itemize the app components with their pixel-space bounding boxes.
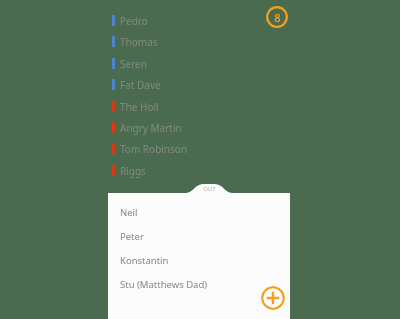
- button[interactable]: Peter: [108, 224, 290, 248]
- button[interactable]: Angry Martin: [112, 117, 282, 138]
- staticText: Stu (Matthews Dad): [120, 278, 208, 291]
- staticText: Peter: [120, 230, 144, 243]
- button[interactable]: Riggs: [112, 160, 282, 181]
- staticText: Pedro: [120, 14, 148, 28]
- button[interactable]: OUT: [196, 184, 222, 194]
- staticText: Konstantin: [120, 254, 169, 267]
- staticText: The Holl: [120, 100, 159, 114]
- button[interactable]: Tom Robinson: [112, 138, 282, 159]
- button[interactable]: 8 players in: [266, 6, 288, 28]
- staticText: Tom Robinson: [120, 142, 188, 156]
- staticText: Neil: [120, 206, 138, 219]
- staticText: OUT: [203, 185, 216, 193]
- button[interactable]: Add player: [261, 286, 285, 310]
- button[interactable]: Fat Dave: [112, 74, 282, 95]
- staticText: Seren: [120, 57, 147, 71]
- button[interactable]: Pedro: [112, 10, 282, 31]
- staticText: Fat Dave: [120, 78, 161, 92]
- button[interactable]: Konstantin: [108, 248, 290, 272]
- button[interactable]: Stu (Matthews Dad): [108, 272, 290, 296]
- staticText: 8: [274, 10, 281, 25]
- button[interactable]: Neil: [108, 200, 290, 224]
- button[interactable]: Thomas: [112, 31, 282, 52]
- staticText: Riggs: [120, 164, 146, 178]
- button[interactable]: The Holl: [112, 96, 282, 117]
- button[interactable]: Seren: [112, 53, 282, 74]
- staticText: Thomas: [120, 35, 158, 49]
- staticText: Angry Martin: [120, 121, 182, 135]
